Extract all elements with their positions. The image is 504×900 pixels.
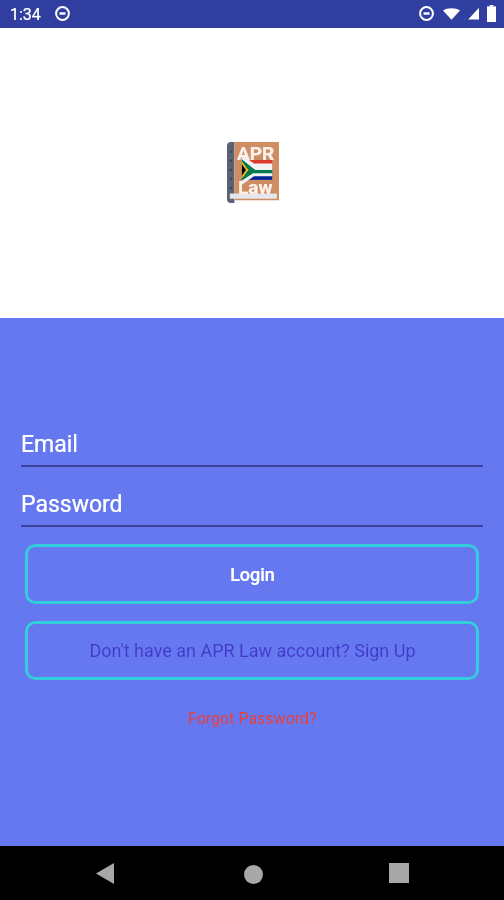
button[interactable]: Email: [21, 431, 483, 467]
button[interactable]: Don't have an APR Law account? Sign Up: [25, 621, 479, 680]
staticText: Email: [21, 431, 78, 458]
button[interactable]: Login: [25, 544, 479, 604]
other: Do not disturb: [55, 6, 70, 21]
staticText: Login: [230, 564, 275, 585]
staticText: Password: [21, 491, 123, 518]
staticText: Law: [238, 176, 273, 198]
button[interactable]: Password: [21, 491, 483, 527]
staticText: 1:34: [10, 5, 41, 24]
button[interactable]: Home: [229, 850, 277, 898]
button[interactable]: Forgot Password?: [180, 706, 325, 731]
button[interactable]: Back: [81, 849, 129, 897]
staticText: Don't have an APR Law account? Sign Up: [89, 640, 416, 661]
staticText: Forgot Password?: [188, 709, 317, 728]
button[interactable]: Recent apps: [375, 849, 423, 897]
staticText: APR: [237, 142, 275, 164]
